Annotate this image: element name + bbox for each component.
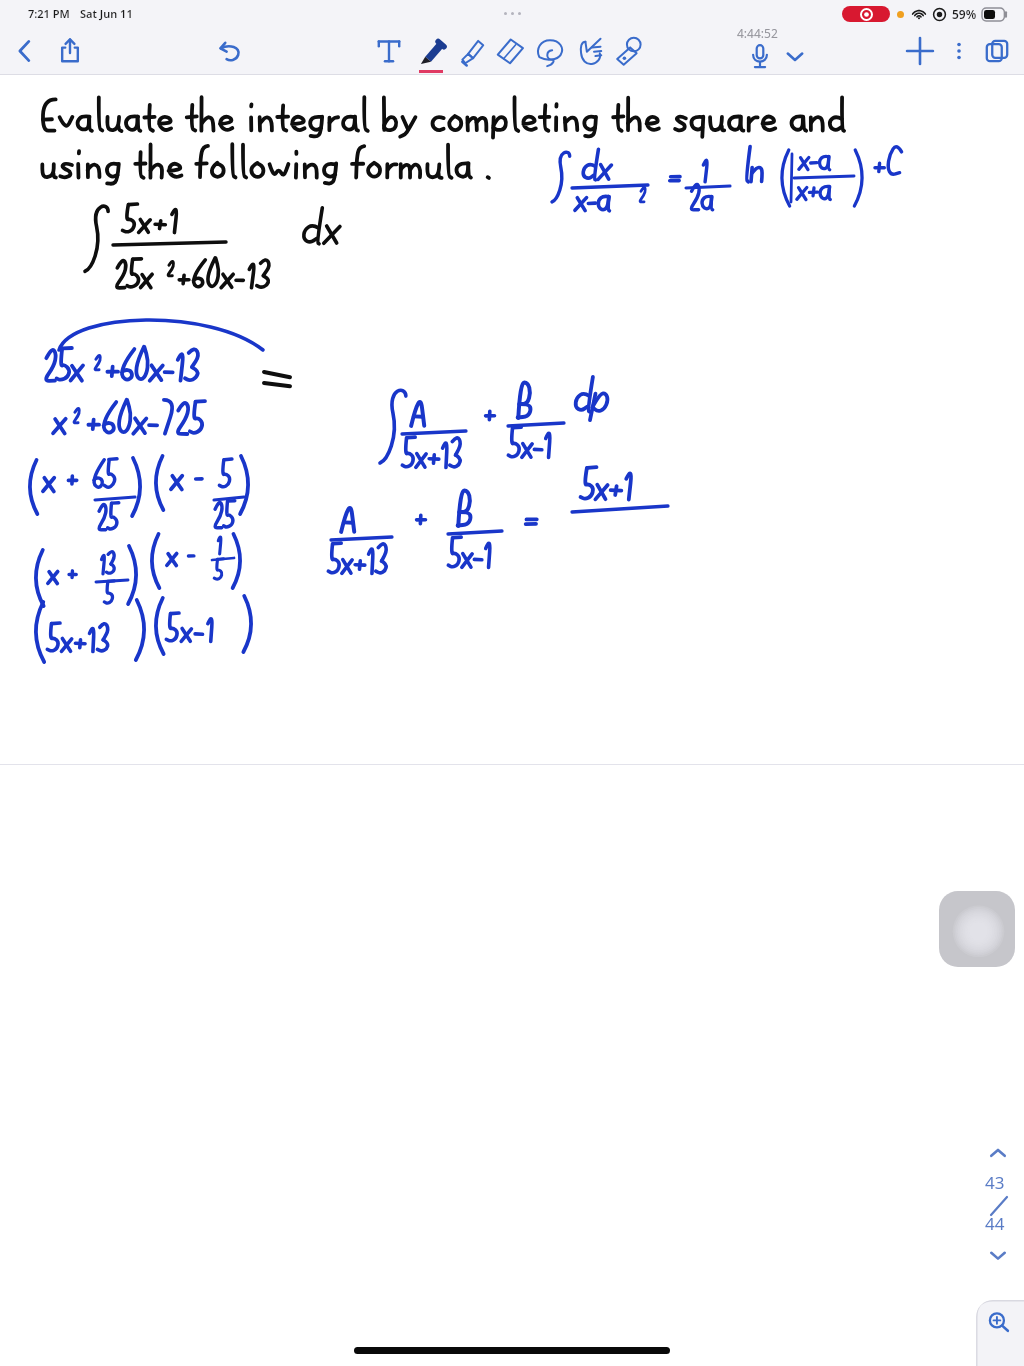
staticText: Sat Jun 11 [80, 6, 133, 21]
button[interactable]: Pen tool [413, 33, 449, 69]
button[interactable]: Zoom [976, 1300, 1024, 1366]
button[interactable]: Add [901, 32, 939, 70]
button[interactable]: Previous page [984, 1139, 1012, 1167]
button[interactable]: Eraser [492, 33, 528, 69]
staticText: 4:44:52 [737, 25, 778, 41]
button[interactable]: Recording options [780, 41, 810, 71]
button[interactable]: Hand [571, 33, 607, 69]
button[interactable]: Text tool [372, 34, 406, 68]
button[interactable]: Recording [842, 6, 890, 22]
button[interactable]: Microphone [745, 41, 775, 71]
button[interactable]: Pages [980, 34, 1014, 68]
button[interactable]: Next page [984, 1241, 1012, 1269]
button[interactable]: Back [9, 35, 41, 67]
button[interactable]: Recording indicator [939, 891, 1015, 967]
staticText: 7:21 PM [28, 6, 70, 21]
button[interactable]: Laser pointer [610, 33, 646, 69]
button[interactable]: More [946, 38, 972, 64]
button[interactable]: Highlighter [453, 33, 489, 69]
button[interactable]: Undo [213, 34, 247, 68]
staticText: 59% [952, 6, 977, 22]
button[interactable]: Share [53, 34, 87, 68]
button[interactable]: Lasso [532, 33, 568, 69]
staticText: 43 [985, 1171, 1005, 1194]
staticText: 44 [985, 1212, 1005, 1235]
